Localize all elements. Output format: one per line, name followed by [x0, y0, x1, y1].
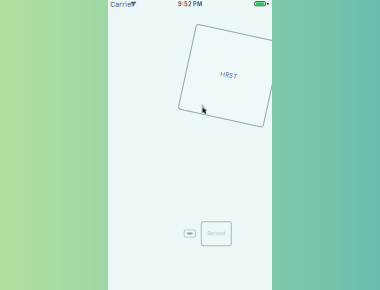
staticText: Second	[207, 231, 225, 236]
button[interactable]: Second	[201, 222, 231, 246]
button[interactable]: Back	[184, 230, 195, 237]
staticText: FIRST	[220, 72, 237, 79]
staticText: Carrier	[110, 0, 134, 8]
staticText: 9:52 PM	[178, 1, 202, 8]
